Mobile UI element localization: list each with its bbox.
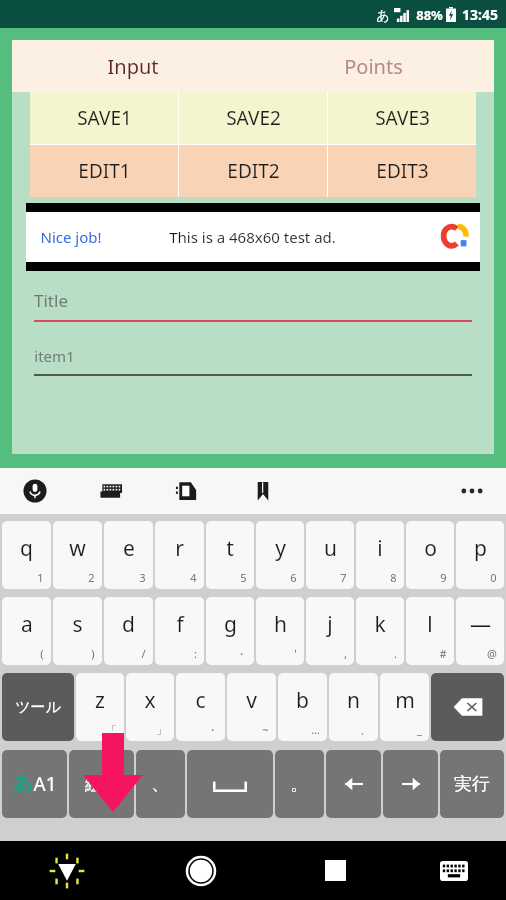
button[interactable]: More options <box>452 471 492 511</box>
button[interactable]: p <box>456 521 504 589</box>
staticText: u <box>324 534 337 563</box>
button[interactable]: SAVE2 <box>179 92 327 144</box>
button[interactable]: Comma <box>136 750 185 818</box>
button[interactable]: z <box>76 673 124 741</box>
button[interactable]: Period <box>275 750 324 818</box>
staticText: あ <box>13 772 33 796</box>
button[interactable]: Space <box>187 750 273 818</box>
staticText: k <box>374 610 386 639</box>
button[interactable]: ツール <box>2 673 74 741</box>
button[interactable]: b <box>278 673 327 741</box>
button[interactable]: Cursor right <box>383 750 438 818</box>
button[interactable]: e <box>104 521 153 589</box>
button[interactable]: m <box>380 673 429 741</box>
staticText: 絵記 <box>85 774 119 795</box>
staticText: z <box>95 686 105 715</box>
button[interactable]: Bookmark <box>248 476 278 506</box>
staticText: EDIT2 <box>227 158 280 184</box>
staticText: Title <box>34 289 68 312</box>
button[interactable]: EDIT1 <box>30 145 178 197</box>
button[interactable]: c <box>176 673 225 741</box>
staticText: f <box>176 610 184 639</box>
button[interactable]: Back <box>0 841 134 900</box>
button[interactable]: Points <box>253 40 494 92</box>
staticText: あ <box>376 7 390 23</box>
button[interactable]: k <box>356 597 404 665</box>
staticText: 7 <box>340 570 347 585</box>
staticText: 13:45 <box>462 5 498 24</box>
button[interactable]: SAVE3 <box>328 92 476 144</box>
button[interactable]: item1 <box>34 346 472 376</box>
staticText: h <box>274 610 287 639</box>
button[interactable]: Cursor left <box>326 750 381 818</box>
staticText: ' <box>294 646 297 661</box>
staticText: e <box>123 534 135 563</box>
staticText: 。 <box>290 772 309 796</box>
staticText: , <box>344 646 347 661</box>
staticText: item1 <box>34 346 75 366</box>
button[interactable]: Keyboard layout <box>96 476 126 506</box>
button[interactable]: t <box>206 521 254 589</box>
staticText: d <box>122 610 135 639</box>
button[interactable]: Switch keyboard <box>402 841 506 900</box>
button[interactable]: SAVE1 <box>30 92 178 144</box>
staticText: i <box>377 534 383 563</box>
staticText: 、 <box>151 772 170 796</box>
button[interactable]: r <box>155 521 204 589</box>
staticText: 1 <box>37 570 44 585</box>
staticText: t <box>226 534 234 563</box>
button[interactable]: Home <box>134 841 268 900</box>
button[interactable]: v <box>227 673 276 741</box>
button[interactable]: Execute <box>440 750 504 818</box>
staticText: ( <box>40 646 44 661</box>
button[interactable]: s <box>53 597 102 665</box>
staticText: ・ <box>236 647 247 661</box>
staticText: This is a 468x60 test ad. <box>169 227 336 247</box>
button[interactable]: Clipboard <box>172 476 202 506</box>
staticText: q <box>20 534 33 563</box>
button[interactable]: h <box>256 597 304 665</box>
button[interactable]: l <box>406 597 454 665</box>
button[interactable]: a <box>2 597 51 665</box>
staticText: b <box>296 686 309 715</box>
button[interactable]: i <box>356 521 404 589</box>
button[interactable]: — <box>456 597 504 665</box>
button[interactable]: g <box>206 597 254 665</box>
staticText: 4 <box>190 570 197 585</box>
button[interactable]: j <box>306 597 354 665</box>
button[interactable]: w <box>53 521 102 589</box>
button[interactable]: f <box>155 597 204 665</box>
staticText: 」 <box>156 723 167 737</box>
staticText: o <box>424 534 437 563</box>
staticText: w <box>69 534 86 563</box>
button[interactable]: EDIT2 <box>179 145 327 197</box>
button[interactable]: Recent apps <box>268 841 402 900</box>
staticText: 2 <box>88 570 95 585</box>
staticText: m <box>395 686 415 715</box>
button[interactable]: Emoji and symbols <box>69 750 134 818</box>
staticText: # <box>439 646 447 661</box>
button[interactable]: u <box>306 521 354 589</box>
button[interactable]: n <box>329 673 378 741</box>
staticText: 、 <box>360 723 371 737</box>
button[interactable]: Input <box>12 40 253 92</box>
button[interactable]: d <box>104 597 153 665</box>
button[interactable]: Switch input mode <box>2 750 67 818</box>
staticText: c <box>195 686 206 715</box>
button[interactable]: y <box>256 521 304 589</box>
staticText: @ <box>487 646 497 661</box>
staticText: SAVE1 <box>77 105 132 131</box>
button[interactable]: Voice input <box>20 476 50 506</box>
button[interactable]: o <box>406 521 454 589</box>
button[interactable]: EDIT3 <box>328 145 476 197</box>
staticText: _ <box>417 722 422 737</box>
staticText: : <box>194 646 197 661</box>
staticText: 6 <box>290 570 297 585</box>
button[interactable]: Title <box>34 289 472 322</box>
button[interactable]: q <box>2 521 51 589</box>
staticText: A1 <box>33 771 57 797</box>
button[interactable]: x <box>126 673 174 741</box>
button[interactable]: Backspace <box>431 673 504 741</box>
button[interactable]: Nice job! <box>26 203 480 271</box>
staticText: ~ <box>262 722 269 737</box>
